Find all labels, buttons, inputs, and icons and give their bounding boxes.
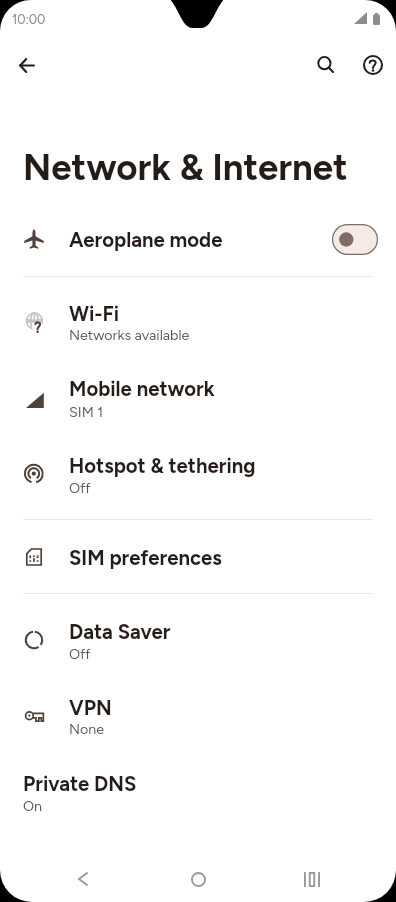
staticText: 10:00 xyxy=(12,12,46,27)
button[interactable]: Aeroplane mode xyxy=(332,224,378,255)
staticText: Network & Internet xyxy=(23,145,348,189)
button[interactable]: Recent apps xyxy=(289,856,335,902)
button[interactable] xyxy=(0,756,396,832)
staticText: SIM 1 xyxy=(69,403,104,420)
staticText: Mobile network xyxy=(69,377,215,401)
button[interactable] xyxy=(0,438,396,514)
staticText: On xyxy=(23,797,43,814)
button[interactable] xyxy=(0,528,396,586)
button[interactable] xyxy=(0,604,396,680)
staticText: Data Saver xyxy=(69,620,171,644)
button[interactable]: Back xyxy=(3,41,51,89)
staticText: Off xyxy=(69,479,91,496)
staticText: Aeroplane mode xyxy=(69,228,223,252)
staticText: Off xyxy=(69,645,91,662)
button[interactable]: Back xyxy=(60,856,106,902)
staticText: None xyxy=(69,720,105,737)
button[interactable] xyxy=(0,362,396,438)
button[interactable]: Help xyxy=(349,41,396,89)
staticText: Wi-Fi xyxy=(69,302,120,326)
staticText: VPN xyxy=(69,696,112,720)
button[interactable]: Search xyxy=(302,41,350,89)
staticText: Hotspot & tethering xyxy=(69,454,256,478)
button[interactable] xyxy=(0,680,396,756)
staticText: Private DNS xyxy=(23,772,137,796)
button[interactable] xyxy=(0,211,396,267)
button[interactable]: Home xyxy=(175,856,221,902)
staticText: SIM preferences xyxy=(69,546,222,570)
staticText: Networks available xyxy=(69,326,190,343)
button[interactable] xyxy=(0,286,396,362)
